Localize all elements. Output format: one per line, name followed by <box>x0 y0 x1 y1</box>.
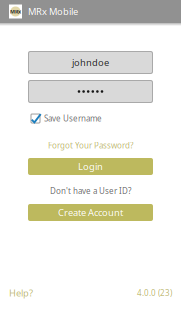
staticText: johndoe <box>72 56 109 69</box>
staticText: MRx <box>10 8 21 15</box>
staticText: Don't have a User ID? <box>50 186 131 196</box>
staticText: Forgot Your Password? <box>48 140 133 151</box>
button[interactable]: Save Username <box>30 113 102 124</box>
button[interactable]: Don't have a User ID? <box>50 186 131 196</box>
staticText: Create Account <box>58 206 123 219</box>
button[interactable]: Create Account <box>28 204 153 221</box>
staticText: 4.0.0 (23) <box>137 287 172 298</box>
staticText: Help? <box>9 287 33 299</box>
staticText: Login <box>78 160 103 173</box>
button[interactable]: Help? <box>9 287 33 299</box>
staticText: Save Username <box>44 113 102 124</box>
button[interactable]: Login <box>28 158 153 175</box>
staticText: MRx Mobile <box>28 5 78 18</box>
button[interactable]: Forgot Your Password? <box>48 141 133 150</box>
